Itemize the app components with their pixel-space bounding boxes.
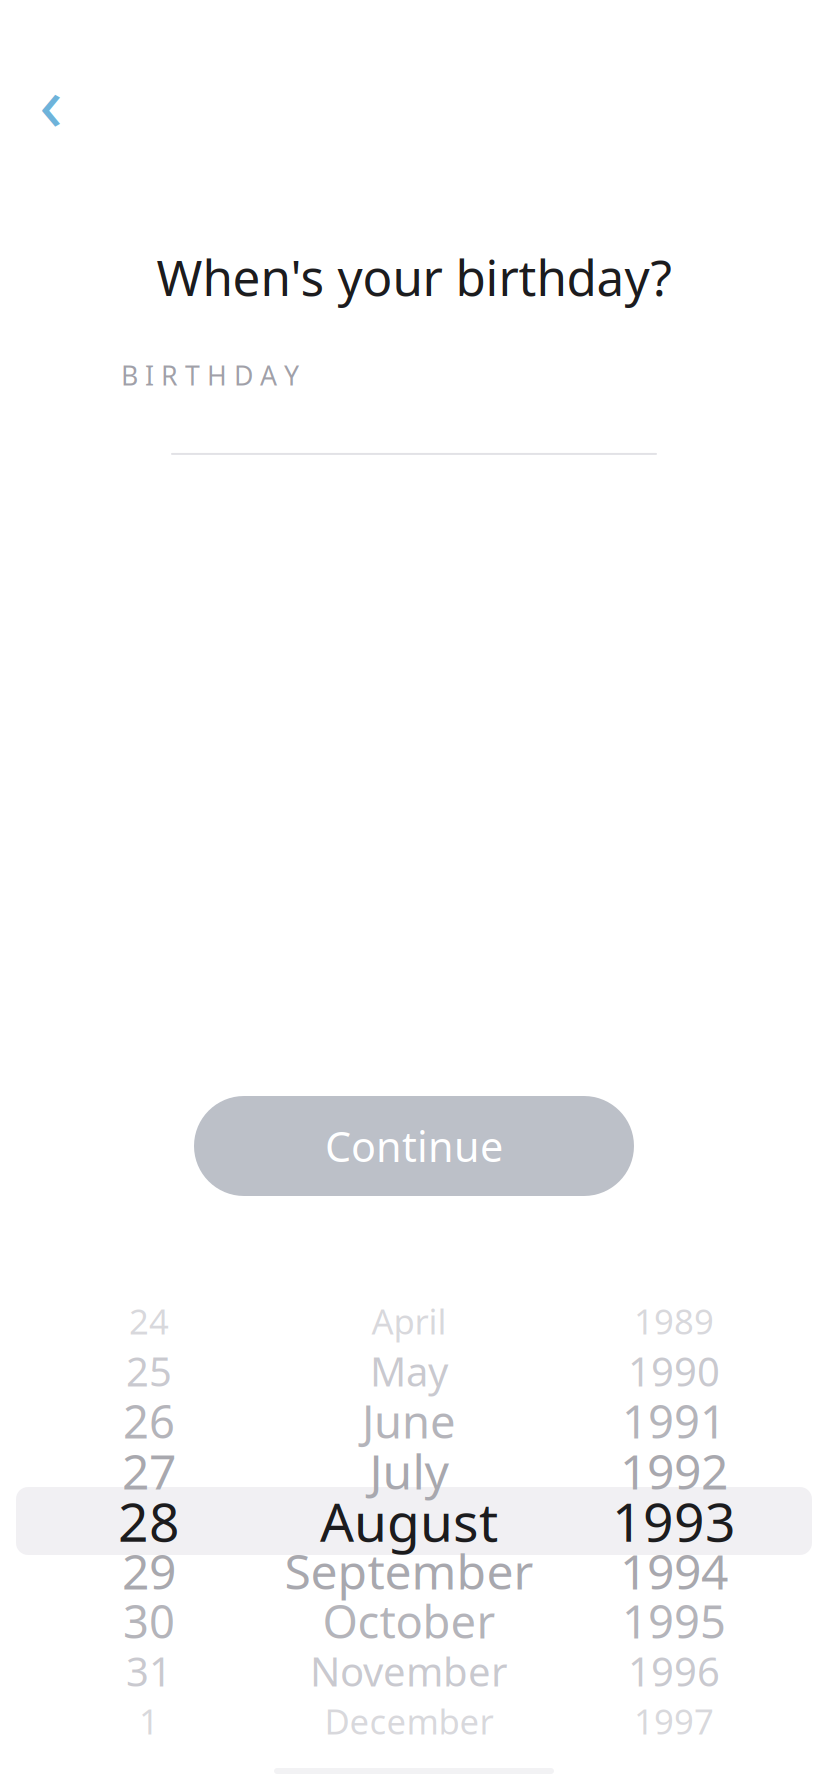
staticText: 27	[122, 1439, 176, 1503]
staticText: Continue	[325, 1119, 503, 1173]
staticText: 1	[139, 1698, 159, 1744]
staticText: 31	[126, 1644, 172, 1697]
button[interactable]: Continue	[194, 1096, 634, 1196]
staticText: 26	[123, 1391, 175, 1451]
staticText: 25	[126, 1344, 172, 1397]
staticText: 1990	[628, 1344, 720, 1397]
staticText: 30	[123, 1591, 175, 1651]
staticText: May	[370, 1344, 448, 1397]
staticText: When's your birthday?	[156, 244, 671, 309]
staticText: 1991	[622, 1391, 726, 1451]
staticText: 1996	[628, 1644, 720, 1697]
staticText: November	[310, 1644, 508, 1697]
staticText: 29	[122, 1539, 176, 1603]
staticText: 28	[118, 1486, 180, 1556]
staticText: August	[320, 1486, 498, 1556]
staticText: 24	[129, 1298, 169, 1344]
staticText: ‹	[39, 50, 63, 152]
staticText: April	[371, 1298, 446, 1344]
staticText: December	[324, 1698, 493, 1744]
staticText: 1989	[634, 1298, 714, 1344]
staticText: October	[322, 1591, 495, 1651]
staticText: 1993	[612, 1486, 736, 1556]
staticText: 1995	[622, 1591, 726, 1651]
button[interactable]: Back	[18, 68, 84, 134]
staticText: June	[362, 1391, 456, 1451]
staticText: July	[369, 1439, 448, 1503]
staticText: 1994	[620, 1539, 728, 1603]
staticText: 1997	[634, 1698, 714, 1744]
staticText: B I R T H D A Y	[121, 357, 299, 393]
staticText: September	[284, 1539, 533, 1603]
staticText: 1992	[620, 1439, 728, 1503]
